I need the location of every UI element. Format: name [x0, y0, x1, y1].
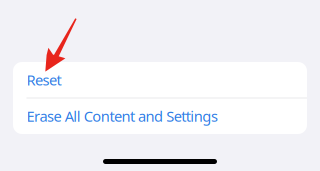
staticText: Reset [26, 70, 62, 90]
staticText: Erase All Content and Settings [26, 106, 218, 126]
button[interactable]: Reset [13, 62, 307, 98]
button[interactable]: Erase All Content and Settings [13, 98, 307, 134]
